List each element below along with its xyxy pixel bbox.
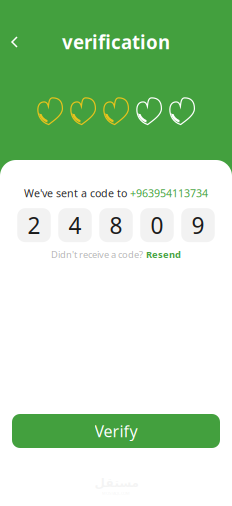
staticText: 8 [109,210,122,240]
staticText: 0 [150,210,163,240]
staticText: +963954113734 [130,186,208,200]
staticText: 9 [191,210,204,240]
button[interactable]: Resend [146,248,181,261]
staticText: verification [62,30,170,54]
staticText: مستقل [94,476,138,490]
button[interactable]: Verify [12,414,220,448]
staticText: Resend [146,248,181,261]
button[interactable]: Back [0,27,27,57]
staticText: Verify [94,420,137,442]
staticText: Didn't receive a code? [51,248,143,261]
staticText: 4 [68,210,81,240]
staticText: 2 [27,210,40,240]
staticText: We've sent a code to [24,186,130,200]
